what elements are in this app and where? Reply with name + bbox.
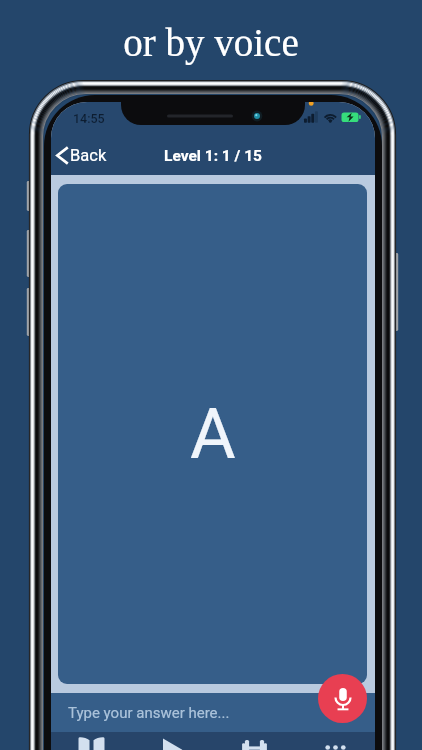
staticText: Level 1: 1 / 15: [164, 147, 262, 165]
staticText: or by voice: [0, 21, 422, 64]
button[interactable]: Play: [132, 732, 213, 750]
button[interactable]: Practice: [214, 732, 295, 750]
button[interactable]: Back: [51, 139, 118, 172]
staticText: 14:55: [73, 111, 105, 126]
button[interactable]: Lessons: [51, 732, 132, 750]
button[interactable]: More: [295, 732, 375, 750]
button[interactable]: Type your answer here...: [51, 693, 375, 732]
staticText: A: [190, 393, 236, 475]
button[interactable]: A: [58, 184, 367, 684]
staticText: Type your answer here...: [68, 704, 230, 722]
button[interactable]: Speak your answer: [318, 674, 367, 723]
staticText: Back: [70, 146, 107, 165]
